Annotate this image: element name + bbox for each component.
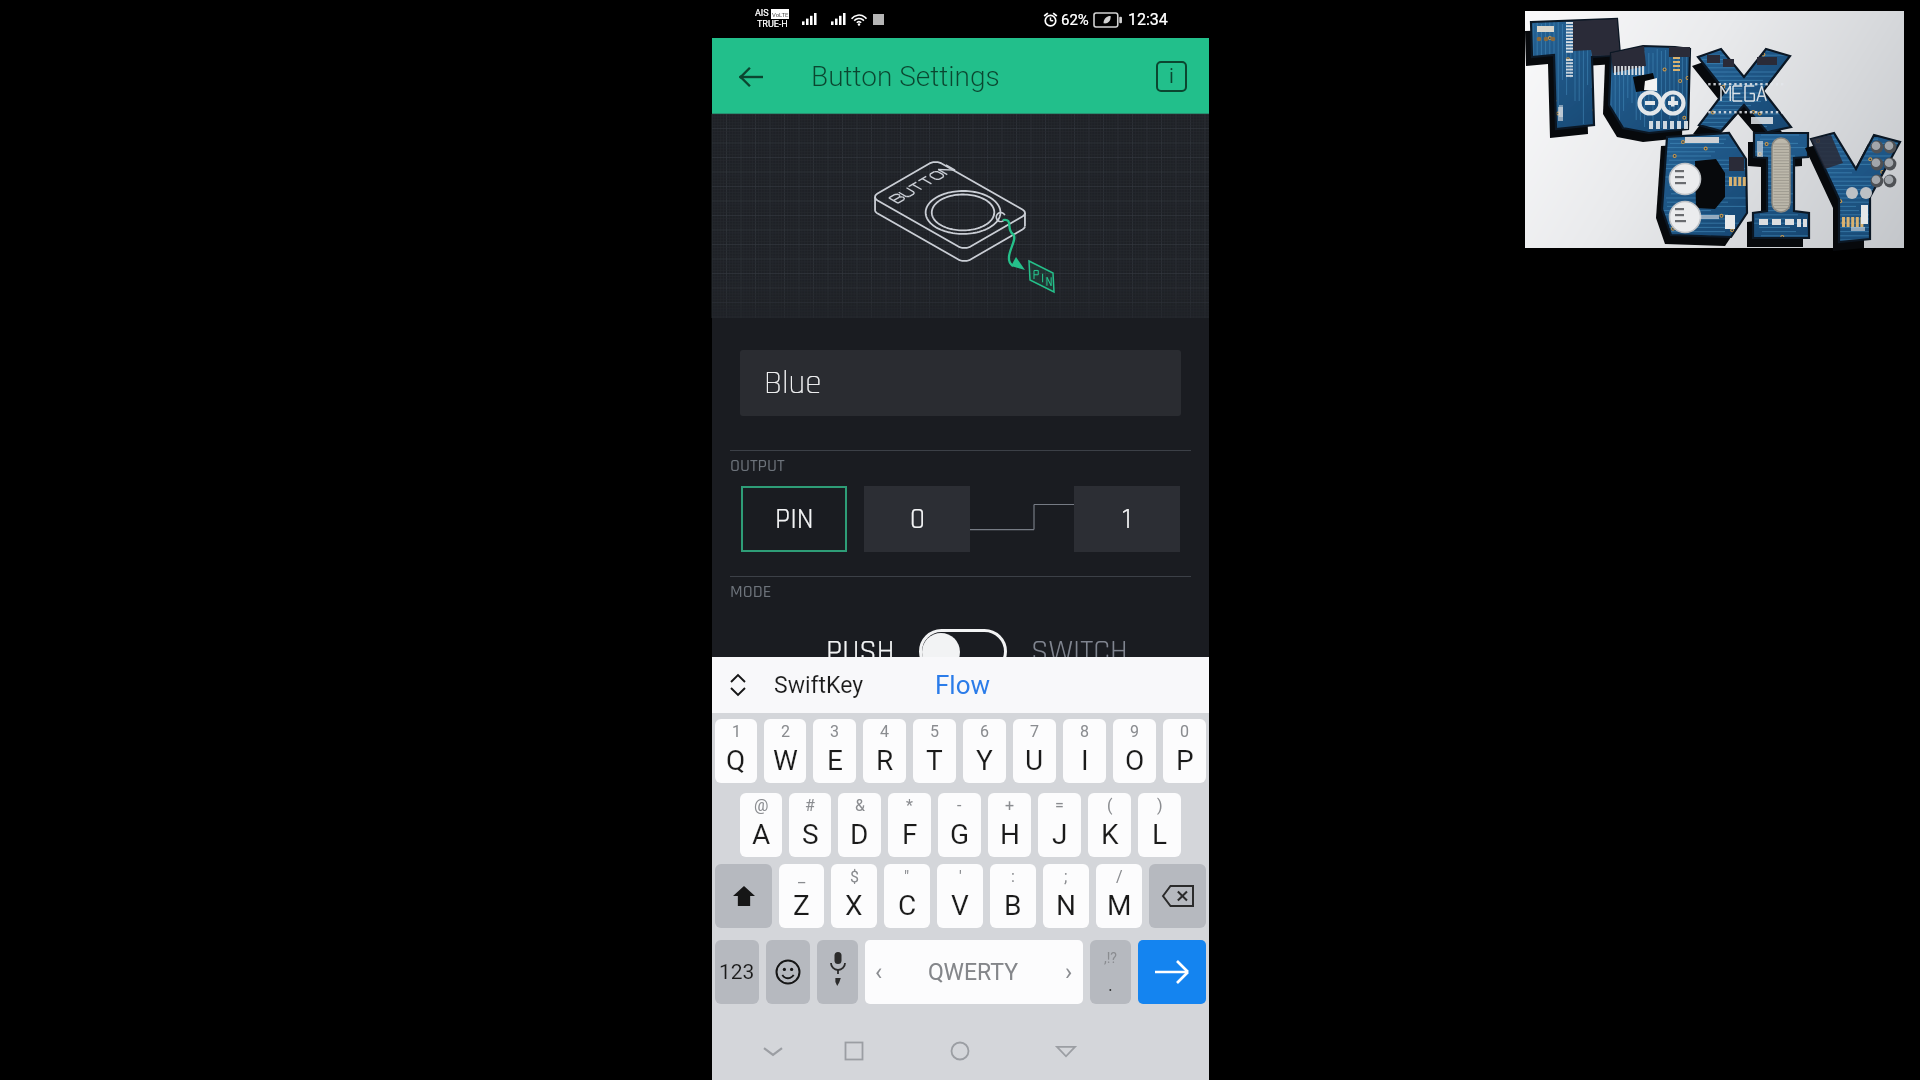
button[interactable]: -	[938, 793, 981, 857]
staticText: ›	[1065, 958, 1073, 986]
staticText: (	[1107, 796, 1113, 815]
button[interactable]: Punctuation	[1090, 940, 1131, 1004]
staticText: C	[898, 889, 917, 922]
button[interactable]: #	[789, 793, 831, 857]
button[interactable]: +	[988, 793, 1031, 857]
button[interactable]: 8	[1063, 719, 1106, 783]
staticText: S	[802, 818, 819, 851]
button[interactable]: 3	[813, 719, 856, 783]
button[interactable]: 1	[715, 719, 757, 783]
button[interactable]: )	[1138, 793, 1181, 857]
button[interactable]: Hide keyboard	[747, 1022, 799, 1080]
staticText: 7	[1030, 722, 1039, 741]
staticText: D	[850, 818, 869, 851]
button[interactable]: Back	[1040, 1022, 1092, 1080]
staticText: 2	[781, 722, 790, 741]
button[interactable]: *	[888, 793, 931, 857]
button[interactable]: Blue	[740, 350, 1181, 416]
button[interactable]: Voice input	[817, 940, 858, 1004]
button[interactable]: Recents	[828, 1022, 880, 1080]
staticText: SWITCH	[1031, 632, 1128, 672]
staticText: 0	[910, 501, 925, 538]
button[interactable]: Numbers	[715, 940, 759, 1004]
staticText: K	[1101, 818, 1119, 851]
staticText: #	[805, 796, 815, 815]
staticText: VoLTE	[772, 11, 789, 18]
staticText: Blue	[764, 362, 822, 404]
button[interactable]	[919, 629, 1007, 674]
staticText: R	[876, 744, 894, 777]
button[interactable]: Emoji	[766, 940, 810, 1004]
staticText: 4	[880, 722, 889, 741]
staticText: Z	[793, 889, 810, 922]
staticText: *	[906, 796, 913, 815]
staticText: I	[1081, 744, 1089, 777]
staticText: 12:34	[1128, 10, 1168, 29]
staticText: V	[951, 889, 969, 922]
staticText: Flow	[935, 670, 991, 700]
button[interactable]: (	[1088, 793, 1131, 857]
staticText: $	[850, 867, 859, 886]
staticText: ;	[1064, 867, 1068, 886]
button[interactable]: 0	[1163, 719, 1206, 783]
staticText: M	[1107, 889, 1132, 922]
button[interactable]: 2	[764, 719, 806, 783]
staticText: T	[926, 744, 943, 777]
staticText: H	[1000, 818, 1020, 851]
button[interactable]: @	[740, 793, 782, 857]
button[interactable]: :	[990, 864, 1036, 928]
button[interactable]: 5	[913, 719, 956, 783]
button[interactable]: Back	[729, 54, 773, 98]
staticText: -	[957, 796, 962, 815]
staticText: '	[959, 867, 962, 886]
button[interactable]: Home	[934, 1022, 986, 1080]
staticText: QWERTY	[928, 959, 1019, 986]
button[interactable]: Backspace	[1149, 864, 1206, 928]
staticText: L	[1152, 818, 1168, 851]
staticText: @	[754, 796, 769, 815]
staticText: Y	[976, 744, 993, 777]
staticText: Button Settings	[811, 60, 1000, 93]
staticText: 5	[930, 722, 939, 741]
button[interactable]: /	[1096, 864, 1142, 928]
staticText: J	[1052, 818, 1068, 851]
button[interactable]: "	[884, 864, 930, 928]
staticText: U	[1025, 744, 1044, 777]
staticText: 9	[1130, 722, 1139, 741]
button[interactable]: ‹	[865, 940, 1083, 1004]
staticText: /	[1116, 867, 1123, 886]
button[interactable]: Enter	[1138, 940, 1206, 1004]
staticText: TRUE-H	[757, 19, 788, 30]
button[interactable]: $	[831, 864, 877, 928]
button[interactable]: '	[937, 864, 983, 928]
staticText: F	[902, 818, 918, 851]
button[interactable]: PIN	[741, 486, 847, 552]
button[interactable]: &	[838, 793, 881, 857]
button[interactable]: _	[779, 864, 824, 928]
staticText: G	[950, 818, 970, 851]
staticText: A	[752, 818, 771, 851]
button[interactable]: 0	[864, 486, 970, 552]
button[interactable]: 6	[963, 719, 1006, 783]
staticText: 3	[830, 722, 839, 741]
staticText: _	[798, 867, 806, 886]
button[interactable]: Shift	[715, 864, 772, 928]
button[interactable]: Info	[1156, 61, 1187, 92]
staticText: ,!?	[1104, 950, 1117, 966]
staticText: PIN	[775, 501, 814, 538]
staticText: i	[1169, 64, 1174, 87]
button[interactable]: ;	[1043, 864, 1089, 928]
button[interactable]: 7	[1013, 719, 1056, 783]
button[interactable]: =	[1038, 793, 1081, 857]
button[interactable]: 1	[1074, 486, 1180, 552]
staticText: 1	[1122, 501, 1132, 538]
staticText: 1	[732, 722, 741, 741]
button[interactable]: 4	[863, 719, 906, 783]
staticText: "	[904, 867, 910, 886]
staticText: O	[1125, 744, 1145, 777]
staticText: P	[1176, 744, 1194, 777]
staticText: =	[1055, 796, 1064, 815]
staticText: N	[1056, 889, 1076, 922]
button[interactable]: 9	[1113, 719, 1156, 783]
staticText: &	[855, 796, 865, 815]
